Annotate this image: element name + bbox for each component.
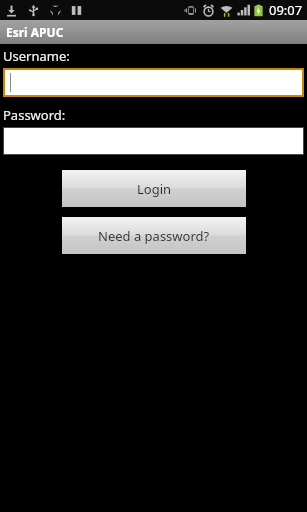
- staticText: Login: [137, 180, 172, 198]
- staticText: Password:: [3, 106, 66, 124]
- staticText: Username:: [3, 47, 70, 65]
- staticText: 09:07: [269, 1, 303, 19]
- staticText: Need a password?: [98, 227, 210, 245]
- staticText: Esri APUC: [6, 24, 64, 40]
- button[interactable]: Login: [62, 170, 246, 207]
- button[interactable]: Need a password?: [62, 217, 246, 254]
- button[interactable]: [3, 127, 304, 155]
- button[interactable]: [3, 68, 304, 97]
